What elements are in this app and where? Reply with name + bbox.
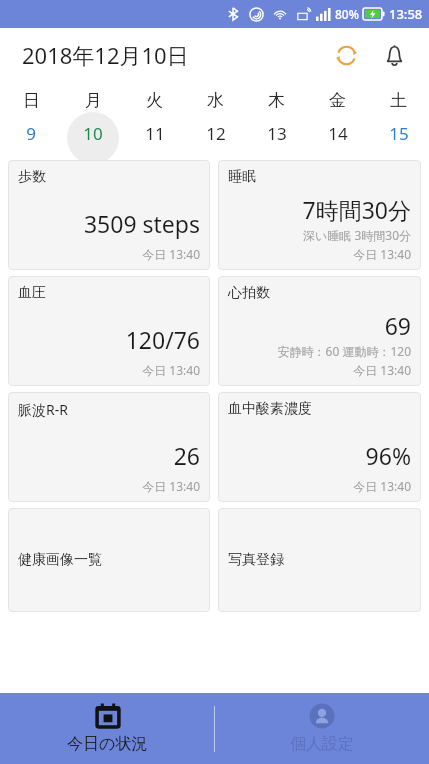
button[interactable]: 歩数 [8,160,210,270]
staticText: 金 [329,90,346,111]
staticText: 睡眠 [228,168,256,186]
staticText: 9 [26,122,36,145]
staticText: 96% [365,440,411,471]
staticText: 12 [206,122,226,145]
button[interactable]: 水 [185,82,246,160]
button[interactable]: 金 [307,82,368,160]
staticText: 火 [146,90,163,111]
staticText: 歩数 [18,168,46,186]
staticText: 今日 13:40 [353,478,411,494]
staticText: 11 [145,122,165,145]
staticText: 120/76 [125,324,200,355]
staticText: 今日 13:40 [142,478,200,494]
button[interactable]: 火 [124,82,185,160]
staticText: 水 [207,90,224,111]
button[interactable]: 脈波R-R [8,392,210,502]
button[interactable]: 月 [62,82,124,160]
button[interactable]: 日 [0,82,62,160]
staticText: 26 [173,440,200,471]
button[interactable]: Refresh [325,34,367,76]
staticText: 3509 steps [83,208,200,239]
staticText: 15 [389,122,409,145]
staticText: 今日 13:40 [142,246,200,262]
button[interactable]: 血圧 [8,276,210,386]
button[interactable]: 睡眠 [218,160,421,270]
staticText: 69 [384,310,411,341]
staticText: 今日の状況 [67,734,148,754]
staticText: 木 [268,90,285,111]
staticText: 80% [335,6,359,22]
staticText: 今日 13:40 [142,362,200,378]
staticText: 血中酸素濃度 [228,400,312,418]
button[interactable]: 今日の状況 [0,693,214,764]
button[interactable]: 写真登録 [218,508,421,612]
staticText: 深い睡眠 3時間30分 [303,227,411,243]
button[interactable]: 個人設定 [214,693,429,764]
staticText: 2018年12月10日 [22,40,189,70]
staticText: 7時間30分 [302,194,411,225]
staticText: 月 [85,90,102,111]
staticText: 脈波R-R [18,400,68,419]
staticText: 今日 13:40 [353,362,411,378]
button[interactable]: 土 [368,82,429,160]
staticText: 血圧 [18,284,46,302]
staticText: 13 [267,122,287,145]
button[interactable]: Notifications [373,34,415,76]
staticText: 14 [328,122,348,145]
staticText: 写真登録 [228,551,284,569]
staticText: 心拍数 [228,284,270,302]
staticText: 土 [390,90,407,111]
staticText: 健康画像一覧 [18,551,102,569]
button[interactable]: 血中酸素濃度 [218,392,421,502]
staticText: 10 [83,122,103,145]
button[interactable]: 心拍数 [218,276,421,386]
staticText: 安静時：60 運動時：120 [277,343,411,359]
staticText: 今日 13:40 [353,246,411,262]
button[interactable]: 健康画像一覧 [8,508,210,612]
staticText: 日 [23,90,40,111]
staticText: 個人設定 [290,734,354,754]
staticText: 13:58 [389,5,423,23]
button[interactable]: 木 [246,82,307,160]
